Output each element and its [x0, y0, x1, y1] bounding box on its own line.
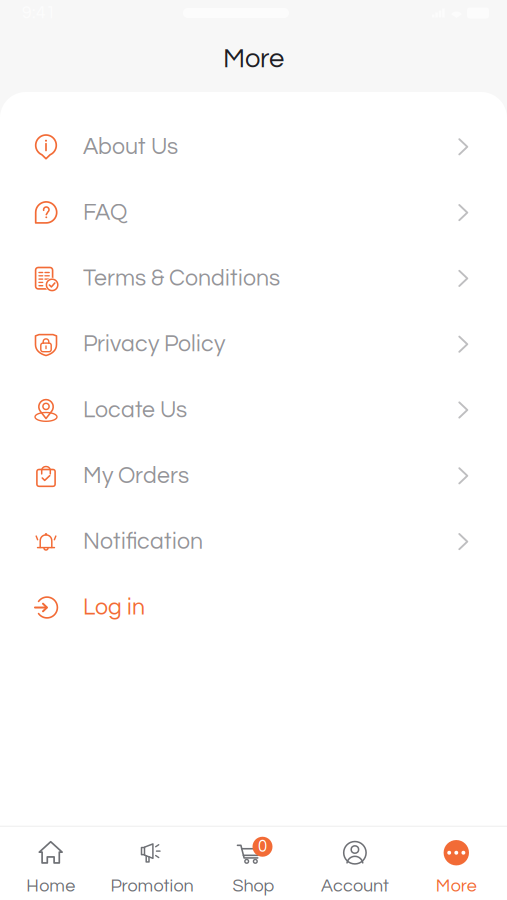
- button[interactable]: Privacy Policy: [0, 311, 507, 377]
- staticText: My Orders: [83, 464, 189, 488]
- button[interactable]: Home: [0, 827, 101, 900]
- staticText: Log in: [83, 596, 145, 619]
- button[interactable]: FAQ: [0, 180, 507, 246]
- button[interactable]: Account: [304, 827, 406, 900]
- staticText: Home: [26, 877, 75, 895]
- button[interactable]: 0: [203, 827, 304, 900]
- button[interactable]: Locate Us: [0, 377, 507, 443]
- staticText: About Us: [83, 135, 178, 159]
- button[interactable]: About Us: [0, 114, 507, 180]
- staticText: More: [223, 45, 284, 73]
- button[interactable]: Notification: [0, 509, 507, 575]
- staticText: Account: [321, 877, 389, 895]
- button[interactable]: More: [406, 827, 507, 900]
- staticText: Shop: [232, 877, 274, 895]
- staticText: Locate Us: [83, 398, 187, 422]
- staticText: Terms & Conditions: [83, 267, 280, 290]
- button[interactable]: My Orders: [0, 443, 507, 509]
- staticText: Privacy Policy: [83, 332, 225, 356]
- staticText: More: [436, 877, 477, 895]
- button[interactable]: Terms & Conditions: [0, 246, 507, 311]
- button[interactable]: Log in: [0, 575, 507, 640]
- staticText: 0: [258, 838, 267, 855]
- staticText: Promotion: [111, 877, 194, 895]
- staticText: Notification: [83, 530, 203, 554]
- button[interactable]: Promotion: [101, 827, 203, 900]
- staticText: FAQ: [83, 201, 127, 225]
